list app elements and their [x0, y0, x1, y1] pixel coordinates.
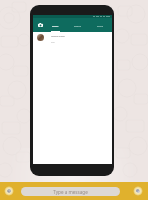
button[interactable]: CALLS	[89, 18, 111, 32]
button[interactable]: Emoji	[4, 186, 14, 196]
staticText: Type a message	[53, 189, 88, 195]
button[interactable]: Hezekiah Watson	[33, 32, 112, 43]
button[interactable]: Type a message	[21, 187, 120, 196]
button[interactable]: CHATS	[44, 18, 67, 32]
staticText: Hello	[51, 41, 55, 43]
button[interactable]: Send voice message	[133, 186, 143, 196]
button[interactable]: Camera	[36, 21, 44, 29]
staticText: STATUS	[74, 25, 82, 28]
button[interactable]: STATUS	[67, 18, 89, 32]
staticText: Hezekiah Watson	[51, 35, 65, 37]
staticText: CHATS	[52, 25, 59, 28]
staticText: CALLS	[97, 25, 104, 28]
